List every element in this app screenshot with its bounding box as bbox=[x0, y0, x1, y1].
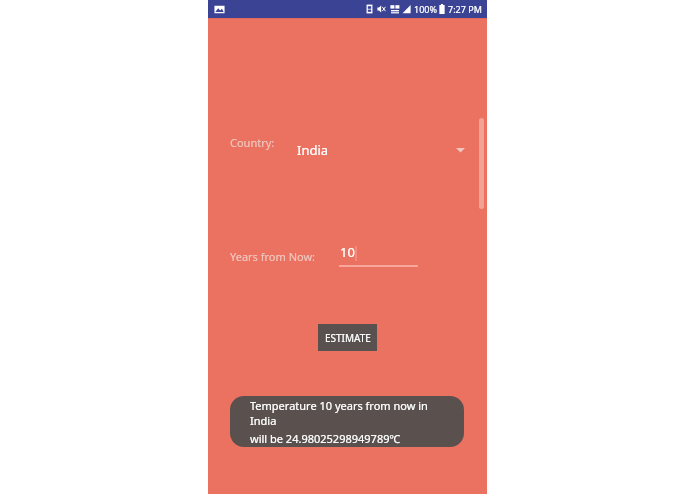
staticText: Years from Now: bbox=[230, 249, 316, 264]
staticText: 100% bbox=[414, 3, 437, 15]
staticText: Temperature 10 years from now in India bbox=[250, 398, 454, 428]
staticText: ESTIMATE bbox=[325, 331, 371, 345]
staticText: Country: bbox=[230, 135, 275, 150]
button[interactable]: India bbox=[294, 133, 474, 163]
button[interactable]: ESTIMATE bbox=[318, 324, 377, 351]
staticText: India bbox=[297, 141, 329, 159]
staticText: 7:27 PM bbox=[448, 3, 482, 15]
staticText: will be 24.98025298949789℃ bbox=[250, 431, 401, 446]
button[interactable]: 10 bbox=[339, 241, 418, 267]
staticText: 10 bbox=[340, 243, 355, 261]
